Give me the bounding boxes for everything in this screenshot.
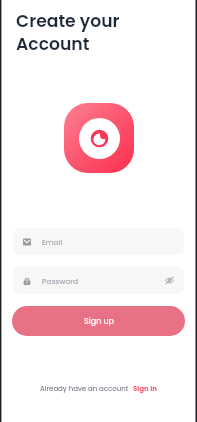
button[interactable]: Email [13, 228, 184, 255]
staticText: Email [42, 237, 63, 247]
staticText: Sign up [84, 316, 114, 327]
staticText: Already have an account [40, 384, 129, 394]
staticText: Password [42, 276, 79, 286]
button[interactable]: Show password [163, 274, 176, 287]
button[interactable]: Sign in [133, 384, 157, 394]
button[interactable]: Password [13, 267, 184, 294]
button[interactable]: Sign up [12, 306, 185, 336]
staticText: Create your Account [16, 9, 120, 56]
staticText: Sign in [133, 384, 157, 394]
